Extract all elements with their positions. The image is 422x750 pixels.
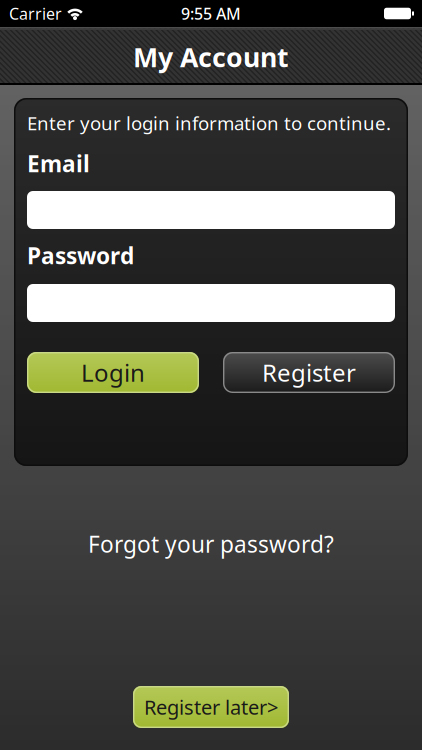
staticText: Register bbox=[262, 357, 356, 388]
button[interactable] bbox=[27, 284, 395, 322]
button[interactable]: Register bbox=[223, 352, 395, 393]
staticText: Email bbox=[27, 148, 90, 178]
staticText: 9:55 AM bbox=[181, 3, 241, 24]
staticText: Login bbox=[81, 357, 145, 388]
staticText: Password bbox=[27, 240, 134, 270]
staticText: Enter your login information to continue… bbox=[27, 111, 391, 135]
staticText: Forgot your password? bbox=[88, 529, 334, 559]
staticText: My Account bbox=[133, 39, 289, 75]
button[interactable]: Forgot your password? bbox=[88, 532, 334, 556]
button[interactable]: Register later> bbox=[133, 686, 289, 728]
staticText: Carrier bbox=[9, 3, 62, 24]
staticText: Register later> bbox=[144, 694, 278, 720]
button[interactable]: Login bbox=[27, 352, 199, 393]
button[interactable] bbox=[27, 191, 395, 229]
